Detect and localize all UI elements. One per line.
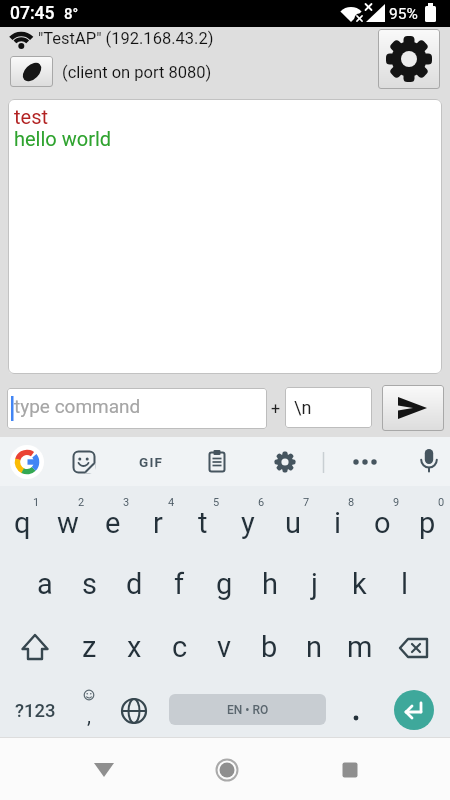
staticText: hello world [14, 127, 112, 149]
staticText: y [241, 506, 255, 540]
button[interactable]: g [202, 556, 247, 611]
button[interactable] [206, 449, 228, 475]
staticText: 95% [389, 5, 418, 23]
button[interactable]: d [112, 556, 157, 611]
button[interactable]: a [22, 556, 67, 611]
staticText: t [198, 506, 208, 540]
button[interactable]: ?123 [10, 683, 60, 738]
staticText: 9 [393, 496, 400, 509]
staticText: 6 [258, 496, 265, 509]
button[interactable] [378, 29, 440, 89]
staticText: 4 [168, 496, 175, 509]
staticText: , [87, 704, 91, 727]
staticText: g [216, 567, 233, 601]
button[interactable] [120, 697, 148, 725]
staticText: q [14, 506, 31, 540]
button[interactable] [350, 452, 380, 472]
staticText: GIF [139, 454, 164, 470]
staticText: i [334, 506, 342, 540]
staticText: 1 [33, 496, 40, 509]
button[interactable]: i [315, 494, 360, 552]
staticText: k [352, 567, 367, 601]
staticText: 0 [438, 496, 445, 509]
button[interactable] [396, 632, 432, 664]
button[interactable]: j [292, 556, 337, 611]
button[interactable]: t [180, 494, 225, 552]
staticText: 5 [213, 496, 220, 509]
staticText: d [126, 567, 143, 601]
button[interactable]: s [67, 556, 112, 611]
button[interactable] [10, 56, 53, 87]
button[interactable]: z [67, 619, 112, 674]
button[interactable]: c [157, 619, 202, 674]
button[interactable]: u [270, 494, 315, 552]
staticText: h [262, 567, 278, 601]
button[interactable] [207, 750, 247, 790]
button[interactable] [7, 388, 267, 429]
button[interactable]: w [45, 494, 90, 552]
button[interactable] [84, 750, 124, 790]
staticText: 7 [303, 496, 310, 509]
button[interactable]: l [382, 556, 427, 611]
button[interactable]: EN • RO [169, 694, 326, 725]
button[interactable] [382, 385, 444, 431]
button[interactable] [344, 700, 368, 724]
staticText: 2 [78, 496, 85, 509]
button[interactable]: GIF [131, 450, 171, 474]
staticText: z [82, 630, 97, 664]
button[interactable] [394, 690, 434, 730]
button[interactable] [72, 450, 96, 474]
staticText: s [82, 567, 97, 601]
button[interactable]: o [360, 494, 405, 552]
button[interactable] [330, 750, 370, 790]
staticText: e [105, 506, 121, 540]
staticText: o [374, 506, 391, 540]
staticText: test [14, 105, 49, 127]
button[interactable]: , [77, 687, 101, 729]
staticText: r [153, 506, 163, 540]
button[interactable]: p [405, 494, 450, 552]
staticText: 3 [123, 496, 130, 509]
staticText: \n [294, 397, 312, 418]
staticText: "TestAP" (192.168.43.2) [38, 29, 214, 48]
staticText: ?123 [15, 700, 56, 722]
button[interactable] [274, 451, 296, 473]
staticText: w [57, 506, 79, 540]
staticText: a [37, 567, 53, 601]
staticText: n [306, 630, 323, 664]
staticText: 8 [348, 496, 355, 509]
button[interactable]: h [247, 556, 292, 611]
staticText: j [311, 567, 318, 601]
staticText: + [271, 399, 281, 418]
button[interactable]: f [157, 556, 202, 611]
staticText: (client on port 8080) [62, 63, 212, 82]
button[interactable]: r [135, 494, 180, 552]
staticText: 07:45 [10, 3, 55, 24]
button[interactable]: b [247, 619, 292, 674]
button[interactable] [10, 445, 44, 479]
staticText: m [347, 630, 373, 664]
button[interactable] [285, 387, 372, 428]
button[interactable] [8, 99, 442, 374]
staticText: u [285, 506, 301, 540]
button[interactable]: m [337, 619, 382, 674]
button[interactable]: y [225, 494, 270, 552]
staticText: x [127, 630, 142, 664]
button[interactable]: v [202, 619, 247, 674]
staticText: type command [14, 395, 141, 417]
staticText: l [401, 567, 409, 601]
staticText: 8° [64, 5, 79, 23]
button[interactable]: x [112, 619, 157, 674]
button[interactable]: k [337, 556, 382, 611]
staticText: p [419, 506, 436, 540]
button[interactable] [417, 446, 441, 476]
button[interactable] [17, 629, 53, 665]
staticText: v [217, 630, 232, 664]
button[interactable]: e [90, 494, 135, 552]
staticText: b [261, 630, 278, 664]
button[interactable]: q [0, 494, 45, 552]
button[interactable]: n [292, 619, 337, 674]
staticText: f [174, 567, 185, 601]
staticText: EN • RO [227, 703, 269, 717]
staticText: c [172, 630, 188, 664]
